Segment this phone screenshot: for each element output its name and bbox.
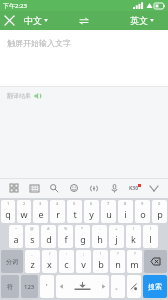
staticText: ( (133, 226, 135, 231)
staticText: 1 (7, 201, 10, 206)
button[interactable]: ' (40, 275, 54, 298)
button[interactable]: 2 (17, 200, 31, 223)
button[interactable]: ~ (9, 225, 23, 248)
button[interactable]: K30 (124, 178, 144, 198)
staticText: - (99, 226, 101, 231)
staticText: % (64, 226, 68, 231)
button[interactable]: # (41, 225, 56, 248)
button[interactable]: 0 (152, 200, 167, 223)
button[interactable]: 3 (33, 200, 48, 223)
button[interactable]: 、 (25, 250, 40, 273)
staticText: z (30, 258, 35, 270)
button[interactable]: Hide keyboard (144, 178, 164, 198)
staticText: k (131, 233, 136, 245)
button[interactable]: Voice (104, 178, 124, 198)
button[interactable]: 4 (50, 200, 65, 223)
button[interactable]: @ (25, 225, 39, 248)
button[interactable]: + (109, 225, 124, 248)
button[interactable]: / (42, 250, 57, 273)
staticText: f (64, 233, 68, 245)
staticText: 下午2:23 (3, 2, 27, 10)
button[interactable]: 9 (135, 200, 150, 223)
button[interactable]: 中文 (24, 15, 48, 26)
button[interactable]: 分词 (1, 250, 23, 273)
staticText: ; (83, 251, 85, 256)
button[interactable]: 。 (111, 275, 125, 298)
staticText: h (97, 233, 103, 245)
button[interactable]: * (75, 225, 90, 248)
staticText: 9 (141, 201, 144, 206)
staticText: t (73, 208, 77, 220)
staticText: l (149, 233, 152, 245)
staticText: / (49, 251, 51, 256)
staticText: 4 (56, 201, 59, 206)
button[interactable]: ! (93, 250, 108, 273)
staticText: j (115, 233, 118, 245)
button[interactable]: ; (76, 250, 91, 273)
button[interactable]: 1 (1, 200, 15, 223)
button[interactable]: 8 (118, 200, 133, 223)
staticText: 5 (73, 201, 76, 206)
staticText: 7 (107, 201, 110, 206)
staticText: u (106, 208, 112, 220)
staticText: : (66, 251, 68, 256)
button[interactable]: Backspace (144, 250, 167, 273)
staticText: e (38, 208, 44, 220)
staticText: ) (150, 226, 152, 231)
button[interactable]: 123 (21, 275, 38, 298)
button[interactable]: Space (56, 275, 109, 298)
button[interactable]: : (59, 250, 74, 273)
staticText: 翻译结果 (7, 92, 31, 100)
button[interactable]: ? (110, 250, 125, 273)
staticText: ? (134, 251, 136, 256)
staticText: 3 (39, 201, 42, 206)
staticText: * (81, 226, 84, 231)
button[interactable]: Apps (4, 178, 24, 198)
button[interactable]: 搜索 (143, 275, 167, 298)
button[interactable]: - (92, 225, 107, 248)
button[interactable]: Search (44, 178, 64, 198)
button[interactable]: Swap languages (75, 12, 93, 30)
button[interactable]: % (58, 225, 73, 248)
staticText: 6 (90, 201, 93, 206)
button[interactable]: Keyboard (24, 178, 44, 198)
staticText: # (47, 226, 50, 231)
button[interactable]: 7 (101, 200, 116, 223)
button[interactable]: ) (143, 225, 158, 248)
button[interactable]: Play translation (34, 92, 42, 100)
button[interactable]: 5 (67, 200, 82, 223)
staticText: 0 (158, 201, 161, 206)
button[interactable]: Emoji (64, 178, 84, 198)
staticText: g (80, 233, 86, 245)
staticText: x (47, 258, 52, 270)
staticText: 8 (124, 201, 127, 206)
staticText: q (5, 208, 11, 220)
button[interactable]: Settings (127, 275, 141, 298)
button[interactable]: 英文 (130, 15, 154, 26)
button[interactable]: 符 (1, 275, 19, 298)
button[interactable]: 触屏开始输入文字 (0, 30, 168, 86)
staticText: s (30, 233, 35, 245)
button[interactable]: ? (127, 250, 142, 273)
staticText: 。 (115, 282, 122, 291)
staticText: 中文 (24, 15, 42, 26)
button[interactable]: ( (126, 225, 141, 248)
staticText: 2 (23, 201, 26, 206)
staticText: ~ (15, 226, 18, 231)
staticText: 123 (24, 283, 35, 291)
staticText: ! (100, 251, 102, 256)
staticText: ? (117, 251, 119, 256)
staticText: o (140, 208, 146, 220)
staticText: d (46, 233, 52, 245)
staticText: y (89, 208, 94, 220)
button[interactable]: 6 (84, 200, 99, 223)
staticText: c (64, 258, 69, 270)
button[interactable]: Close (0, 11, 19, 30)
staticText: K30 (129, 185, 139, 192)
staticText: 、 (31, 251, 35, 256)
button[interactable]: Text size (84, 178, 104, 198)
staticText: v (81, 258, 86, 270)
staticText: i (124, 208, 127, 220)
staticText: @ (30, 226, 34, 231)
staticText: w (20, 208, 28, 220)
